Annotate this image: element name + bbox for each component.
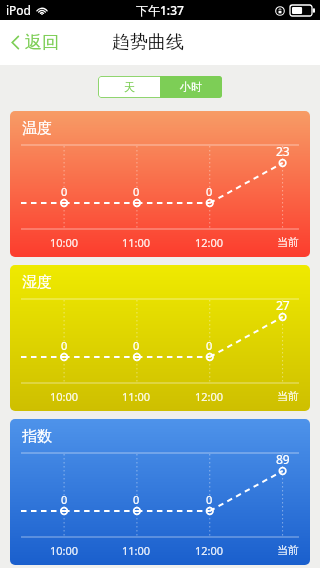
button[interactable]: 返回 <box>6 26 64 59</box>
staticText: 小时 <box>180 80 202 94</box>
staticText: 89 <box>276 451 290 467</box>
staticText: 0 <box>133 338 140 353</box>
staticText: 0 <box>206 338 213 353</box>
button[interactable]: 天 <box>98 76 160 98</box>
staticText: 0 <box>206 492 213 507</box>
staticText: 27 <box>276 297 290 313</box>
button[interactable]: 指数 <box>10 419 310 565</box>
staticText: 温度 <box>22 119 52 138</box>
staticText: 12:00 <box>195 235 224 250</box>
staticText: 10:00 <box>50 543 79 558</box>
staticText: 趋势曲线 <box>112 31 184 54</box>
staticText: 当前 <box>277 235 299 249</box>
staticText: 10:00 <box>50 389 79 404</box>
staticText: 23 <box>276 143 290 159</box>
staticText: iPod <box>6 2 31 18</box>
staticText: 返回 <box>25 32 59 53</box>
staticText: 下午1:37 <box>136 2 184 18</box>
staticText: 0 <box>61 492 68 507</box>
staticText: 天 <box>124 80 135 94</box>
staticText: 12:00 <box>195 543 224 558</box>
staticText: 0 <box>133 184 140 199</box>
staticText: 12:00 <box>195 389 224 404</box>
button[interactable]: 小时 <box>160 76 222 98</box>
staticText: 0 <box>133 492 140 507</box>
staticText: 当前 <box>277 543 299 557</box>
staticText: 11:00 <box>122 235 151 250</box>
staticText: 0 <box>61 184 68 199</box>
button[interactable]: 湿度 <box>10 265 310 411</box>
staticText: 0 <box>61 338 68 353</box>
staticText: 0 <box>206 184 213 199</box>
staticText: 指数 <box>22 427 52 446</box>
staticText: 当前 <box>277 389 299 403</box>
staticText: 湿度 <box>22 273 52 292</box>
staticText: 11:00 <box>122 543 151 558</box>
staticText: 11:00 <box>122 389 151 404</box>
staticText: 10:00 <box>50 235 79 250</box>
button[interactable]: 温度 <box>10 111 310 257</box>
